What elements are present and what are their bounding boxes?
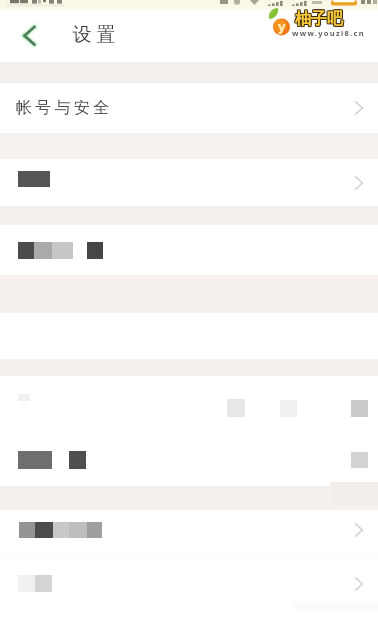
staticText: 设置 xyxy=(70,23,118,47)
staticText: 柚子吧 xyxy=(294,8,342,28)
button[interactable] xyxy=(0,555,378,601)
staticText: y xyxy=(278,17,286,35)
staticText: 柚子吧 xyxy=(294,9,342,29)
staticText: 柚子吧 xyxy=(295,8,343,28)
button[interactable]: Back xyxy=(0,12,56,62)
button[interactable] xyxy=(0,225,378,275)
staticText: 柚子吧 xyxy=(295,10,343,30)
button[interactable] xyxy=(0,510,378,554)
staticText: 柚子吧 xyxy=(294,10,342,30)
button[interactable] xyxy=(0,159,378,206)
staticText: 柚子吧 xyxy=(296,10,344,30)
staticText: 柚子吧 xyxy=(296,8,344,28)
button[interactable]: 帐号与安全 xyxy=(0,83,378,133)
staticText: 帐号与安全 xyxy=(14,98,111,118)
staticText: 柚子吧 xyxy=(296,9,344,29)
staticText: www.youzi8.cn xyxy=(292,28,365,38)
staticText: 柚子吧 xyxy=(295,9,343,29)
